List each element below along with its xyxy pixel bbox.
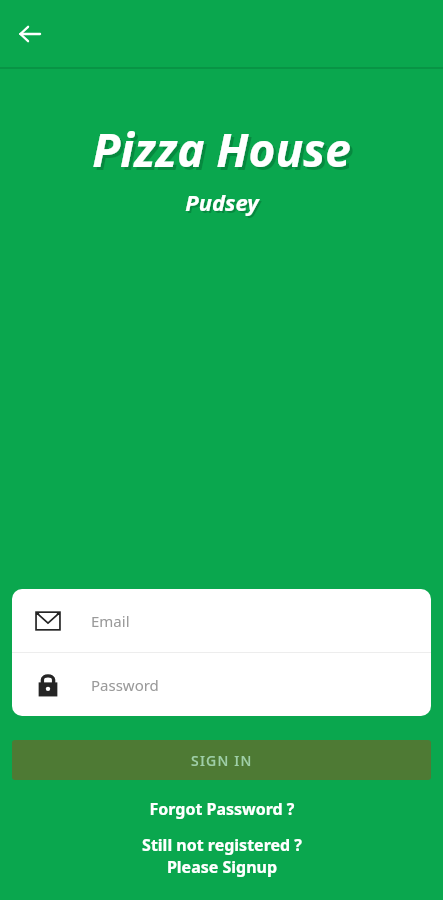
staticText: Still not registered ? Please Signup [142, 834, 302, 878]
staticText: Pudsey [187, 189, 261, 219]
button[interactable]: Password [12, 653, 431, 716]
button[interactable]: Back [8, 12, 52, 56]
staticText: Pudsey [185, 187, 259, 217]
button[interactable]: Still not registered ? Please Signup [0, 834, 443, 878]
staticText: Forgot Password ? [149, 798, 295, 820]
button[interactable]: SIGN IN [12, 740, 431, 780]
button[interactable]: Forgot Password ? [0, 794, 443, 824]
staticText: Email [91, 611, 130, 631]
staticText: Password [91, 675, 159, 695]
staticText: Pizza House [92, 118, 351, 181]
staticText: SIGN IN [191, 751, 253, 770]
staticText: Pizza House [95, 121, 354, 184]
button[interactable]: Email [12, 589, 431, 652]
